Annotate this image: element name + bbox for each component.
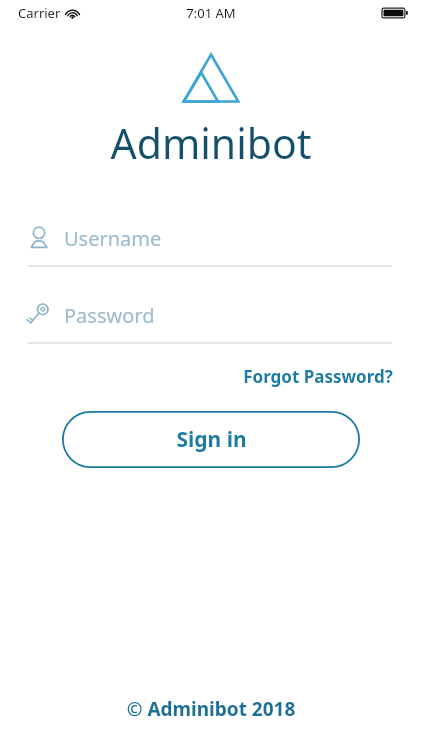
other: User [28,225,50,251]
staticText: Password [64,302,155,329]
staticText: Sign in [176,425,247,454]
staticText: © Adminibot 2018 [0,696,422,722]
staticText: Adminibot [0,115,422,171]
button[interactable]: Password key [0,300,422,344]
button[interactable]: Forgot Password? [240,360,396,393]
staticText: Carrier [18,4,61,22]
staticText: 7:01 AM [186,4,236,22]
button[interactable]: Sign in [62,411,360,468]
staticText: Username [64,225,162,252]
staticText: Forgot Password? [243,365,393,388]
other: Password key [28,302,50,328]
button[interactable]: User [0,223,422,267]
